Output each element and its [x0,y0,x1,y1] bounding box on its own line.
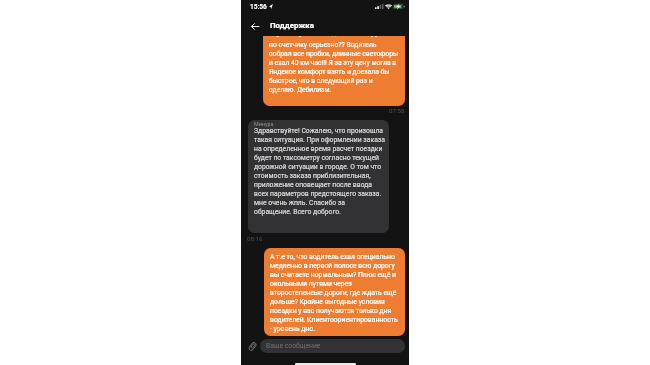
staticText: Здравствуйте. Поездка за 1400 рублей [269,36,394,37]
staticText: Поддержка [270,21,314,30]
button[interactable]: А т.е то, что водитель ехал специально м… [264,248,405,336]
staticText: Ваше сообщение [266,342,321,350]
staticText: 08:16 [247,235,263,242]
staticText: А т.е то, что водитель ехал специально м… [270,253,398,333]
button[interactable]: Back [245,17,265,36]
button[interactable]: Attach file [244,338,260,354]
staticText: по счетчику серьезно?? Водитель собрал в… [269,41,399,94]
staticText: Минура [254,121,274,127]
button[interactable]: Минура [248,120,389,233]
staticText: 15:56 [250,3,267,11]
staticText: 07:58 [389,107,405,114]
button[interactable]: Ваше сообщение [260,339,405,353]
button[interactable]: Здравствуйте. Поездка за 1400 рублей [263,36,405,106]
staticText: Здравствуйте! Сожалею, что произошла так… [254,127,385,216]
